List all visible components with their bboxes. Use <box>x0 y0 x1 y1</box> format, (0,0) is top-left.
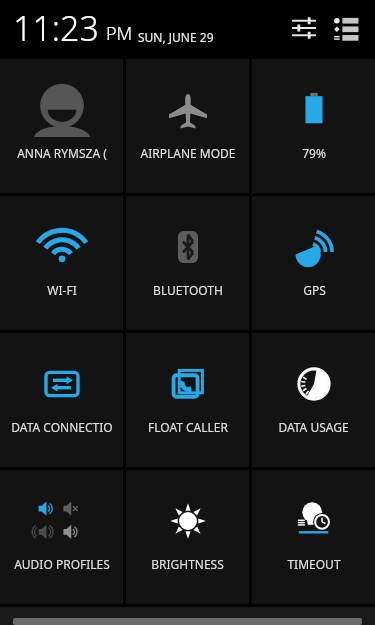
button[interactable]: BRIGHTNESS <box>126 470 249 604</box>
button[interactable]: GPS <box>252 196 375 330</box>
button[interactable]: 79% <box>252 59 375 193</box>
button[interactable]: WI-FI <box>0 196 123 330</box>
staticText: SUN, JUNE 29 <box>138 29 214 45</box>
staticText: BLUETOOTH <box>153 282 223 298</box>
button[interactable]: AIRPLANE MODE <box>126 59 249 193</box>
button[interactable]: TIMEOUT <box>252 470 375 604</box>
staticText: AUDIO PROFILES <box>14 556 110 572</box>
button[interactable]: Quick settings <box>286 10 322 46</box>
staticText: AIRPLANE MODE <box>140 145 236 161</box>
button[interactable]: DATA USAGE <box>252 333 375 467</box>
button[interactable]: Notifications <box>328 10 364 46</box>
staticText: DATA CONNECTIO <box>11 419 113 435</box>
staticText: 79% <box>302 145 326 161</box>
staticText: GPS <box>303 282 326 298</box>
staticText: PM <box>106 21 133 46</box>
button[interactable]: ANNA RYMSZA ( <box>0 59 123 193</box>
staticText: 11:23 <box>13 5 99 51</box>
staticText: TIMEOUT <box>287 556 341 572</box>
staticText: DATA USAGE <box>278 419 349 435</box>
staticText: FLOAT CALLER <box>148 419 228 435</box>
button[interactable]: FLOAT CALLER <box>126 333 249 467</box>
button[interactable]: DATA CONNECTIO <box>0 333 123 467</box>
staticText: BRIGHTNESS <box>151 556 224 572</box>
button[interactable]: BLUETOOTH <box>126 196 249 330</box>
staticText: ANNA RYMSZA ( <box>17 145 107 161</box>
staticText: WI-FI <box>47 282 77 298</box>
button[interactable]: AUDIO PROFILES <box>0 470 123 604</box>
